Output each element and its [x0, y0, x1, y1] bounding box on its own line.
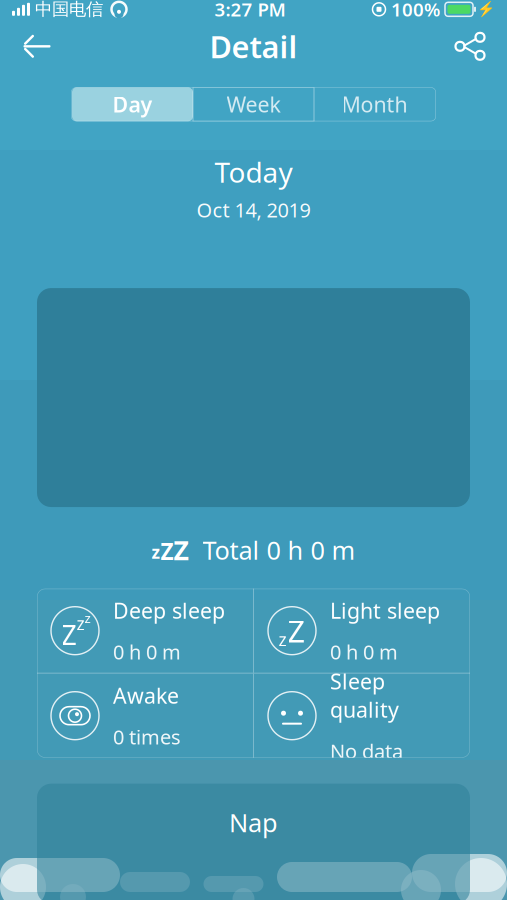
- staticText: Week: [226, 90, 280, 118]
- staticText: z: [84, 609, 90, 627]
- staticText: Z: [173, 532, 188, 568]
- staticText: 0 h 0 m: [113, 639, 181, 665]
- button[interactable]: Awake: [37, 674, 253, 758]
- staticText: Nap: [229, 806, 278, 839]
- staticText: Today: [214, 153, 292, 190]
- staticText: Z: [160, 536, 173, 566]
- staticText: Oct 14, 2019: [196, 196, 310, 223]
- button[interactable]: Sleep quality: [254, 674, 470, 758]
- staticText: 中国电信: [35, 0, 103, 20]
- staticText: Light sleep: [330, 596, 440, 624]
- staticText: Month: [341, 90, 407, 118]
- staticText: Total 0 h 0 m: [202, 533, 355, 567]
- staticText: Detail: [209, 26, 297, 67]
- staticText: Sleep quality: [330, 667, 399, 724]
- button[interactable]: z: [254, 589, 470, 673]
- staticText: Z: [61, 617, 76, 652]
- staticText: z: [278, 628, 286, 651]
- button[interactable]: Month: [314, 87, 435, 121]
- staticText: 0 h 0 m: [330, 639, 398, 665]
- staticText: ⚡: [477, 1, 495, 18]
- staticText: 100%: [391, 0, 440, 22]
- staticText: Deep sleep: [113, 596, 225, 624]
- button[interactable]: Nap: [37, 784, 470, 900]
- button[interactable]: Back: [14, 24, 60, 68]
- staticText: 3:27 PM: [214, 0, 285, 22]
- staticText: Z: [287, 610, 305, 651]
- staticText: Day: [112, 90, 152, 118]
- staticText: No data: [330, 738, 403, 764]
- staticText: z: [151, 541, 160, 564]
- staticText: z: [76, 612, 84, 635]
- button[interactable]: Share: [449, 24, 493, 68]
- staticText: Awake: [113, 681, 179, 709]
- staticText: 0 times: [113, 724, 181, 750]
- button[interactable]: Z: [37, 589, 253, 673]
- button[interactable]: Day: [72, 87, 193, 121]
- button[interactable]: Week: [193, 87, 314, 121]
